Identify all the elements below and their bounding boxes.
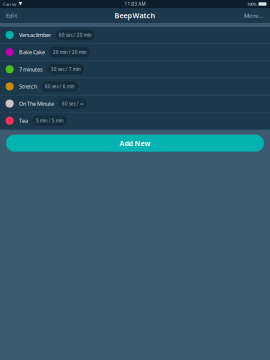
staticText: 5 min / 5 min bbox=[36, 117, 64, 124]
button[interactable]: Versaclimber bbox=[0, 27, 270, 44]
staticText: 60 sec / 20 min bbox=[59, 32, 92, 38]
button[interactable]: Add New bbox=[6, 135, 264, 152]
button[interactable]: More... bbox=[242, 9, 266, 23]
staticText: Edit bbox=[6, 12, 17, 20]
staticText: Stretch bbox=[19, 83, 37, 90]
button[interactable]: Stretch bbox=[0, 78, 270, 95]
staticText: 100% bbox=[247, 1, 257, 7]
staticText: Bake Cake bbox=[19, 48, 45, 56]
button[interactable]: Tea bbox=[0, 113, 270, 130]
staticText: 20 min / 20 min bbox=[53, 49, 87, 55]
staticText: 11:03 AM bbox=[124, 1, 145, 7]
staticText: More... bbox=[244, 12, 264, 20]
staticText: 60 sec / ∞ bbox=[62, 100, 84, 107]
staticText: 30 sec / 7 min bbox=[51, 66, 81, 72]
button[interactable]: Edit bbox=[4, 9, 19, 23]
staticText: Versaclimber bbox=[19, 31, 51, 39]
staticText: 60 sec / 6 min bbox=[45, 83, 75, 90]
staticText: Carrier bbox=[3, 1, 17, 7]
staticText: BeepWatch bbox=[114, 11, 155, 20]
button[interactable]: Bake Cake bbox=[0, 44, 270, 61]
button[interactable]: On The Minute bbox=[0, 95, 270, 113]
staticText: Add New bbox=[119, 138, 150, 148]
staticText: Tea bbox=[19, 117, 28, 124]
button[interactable]: 7 minutes bbox=[0, 61, 270, 78]
staticText: 7 minutes bbox=[19, 66, 43, 73]
staticText: On The Minute bbox=[19, 100, 54, 107]
